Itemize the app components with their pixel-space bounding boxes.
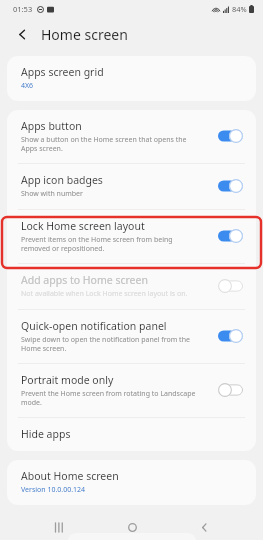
staticText: Lock Home screen layout — [21, 219, 145, 233]
button[interactable]: Apps button — [7, 110, 256, 163]
button[interactable]: Home — [118, 514, 146, 540]
staticText: About Home screen — [21, 469, 119, 483]
button[interactable]: Switch on — [218, 129, 243, 143]
staticText: App icon badges — [21, 173, 103, 187]
staticText: Apps screen grid — [21, 65, 104, 79]
staticText: Home screen — [41, 25, 128, 44]
button[interactable]: Apps screen grid — [7, 56, 256, 101]
button[interactable]: Lock Home screen layout — [7, 210, 256, 263]
button[interactable]: App icon badges — [7, 164, 256, 209]
staticText: Not available when Lock Home screen layo… — [21, 289, 188, 299]
staticText: 84% — [232, 4, 247, 14]
button[interactable]: Switch off — [218, 383, 243, 397]
button[interactable]: Hide apps — [7, 418, 256, 451]
staticText: Prevent the Home screen from rotating to… — [21, 389, 196, 407]
staticText: Prevent items on the Home screen from be… — [21, 235, 173, 253]
staticText: Portrait mode only — [21, 373, 114, 387]
staticText: Quick-open notification panel — [21, 319, 167, 333]
button[interactable]: Switch off — [218, 279, 243, 293]
button[interactable]: Back — [11, 23, 33, 45]
button[interactable]: Back — [190, 514, 218, 540]
staticText: 4X6 — [21, 81, 34, 91]
staticText: 01:53 — [13, 4, 33, 14]
button[interactable]: Switch on — [218, 329, 243, 343]
button[interactable]: Add apps to Home screen — [7, 264, 256, 309]
staticText: Show a button on the Home screen that op… — [21, 135, 187, 153]
staticText: Add apps to Home screen — [21, 273, 148, 287]
button[interactable]: Recents — [45, 514, 73, 540]
staticText: Apps button — [21, 119, 82, 133]
button[interactable]: Switch on — [218, 179, 243, 193]
button[interactable]: About Home screen — [7, 460, 256, 505]
staticText: Show with number — [21, 189, 83, 199]
button[interactable]: Portrait mode only — [7, 364, 256, 417]
button[interactable]: Quick-open notification panel — [7, 310, 256, 363]
button[interactable]: Switch on — [218, 229, 243, 243]
staticText: Hide apps — [21, 427, 71, 441]
staticText: Swipe down to open the notification pane… — [21, 335, 190, 353]
staticText: Version 10.0.00.124 — [21, 485, 86, 495]
